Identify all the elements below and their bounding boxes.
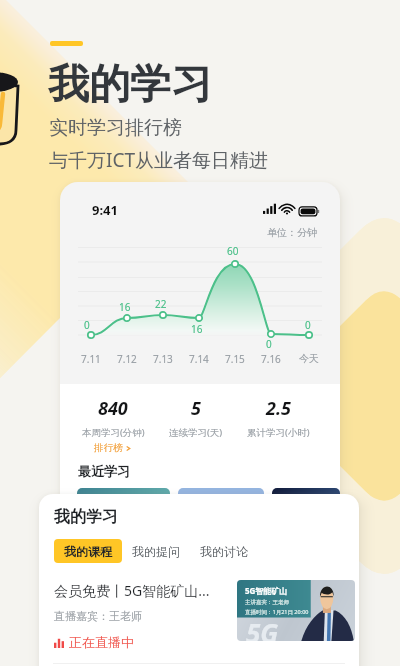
- button[interactable]: 我的课程: [54, 539, 122, 563]
- staticText: 7.15: [225, 352, 245, 366]
- staticText: 0: [84, 318, 90, 332]
- button[interactable]: 我的提问: [122, 539, 190, 563]
- staticText: 5: [191, 396, 201, 421]
- staticText: 直播嘉宾：王老师: [54, 609, 142, 623]
- staticText: 2.5: [266, 396, 292, 421]
- staticText: 840: [98, 396, 128, 421]
- button[interactable]: 我的讨论: [190, 539, 258, 563]
- staticText: 与千万ICT从业者每日精进: [49, 147, 269, 173]
- staticText: 9:41: [92, 201, 118, 219]
- staticText: 我的课程: [64, 544, 112, 559]
- staticText: 主讲嘉宾：王老师: [245, 599, 289, 606]
- staticText: 我的提问: [132, 544, 180, 559]
- staticText: 直播时间：1月21日 20:00: [245, 608, 309, 616]
- staticText: 16: [191, 322, 203, 336]
- button[interactable]: 2.5: [237, 396, 320, 439]
- staticText: 16: [119, 300, 131, 314]
- button[interactable]: 5: [154, 396, 237, 439]
- staticText: 7.14: [189, 352, 209, 366]
- staticText: 单位：分钟: [267, 226, 317, 239]
- staticText: 0: [266, 337, 272, 351]
- staticText: 我的讨论: [200, 544, 248, 559]
- staticText: 本周学习(分钟): [82, 426, 145, 439]
- button[interactable]: 840: [72, 396, 154, 454]
- staticText: 7.13: [153, 352, 173, 366]
- staticText: 今天: [299, 352, 319, 365]
- staticText: 60: [227, 244, 239, 258]
- staticText: 实时学习排行榜: [49, 116, 182, 140]
- staticText: 我的学习: [48, 59, 212, 111]
- staticText: 正在直播中: [69, 634, 134, 650]
- staticText: 我的学习: [54, 507, 118, 527]
- staticText: 连续学习(天): [169, 426, 223, 439]
- staticText: 累计学习(小时): [247, 426, 310, 439]
- staticText: 5G智能矿山: [84, 493, 122, 503]
- staticText: 5G智能矿山: [245, 585, 288, 596]
- staticText: 22: [155, 297, 167, 311]
- staticText: 0: [305, 318, 311, 332]
- staticText: 最近学习: [78, 463, 130, 479]
- staticText: 7.11: [81, 352, 101, 366]
- staticText: 5G: [246, 615, 279, 641]
- staticText: 7.12: [117, 352, 137, 366]
- staticText: 排行榜: [94, 442, 123, 454]
- staticText: 7.16: [261, 352, 281, 366]
- staticText: 会员免费丨5G智能矿山...: [54, 581, 210, 600]
- button[interactable]: 会员免费丨5G智能矿山...: [54, 579, 355, 650]
